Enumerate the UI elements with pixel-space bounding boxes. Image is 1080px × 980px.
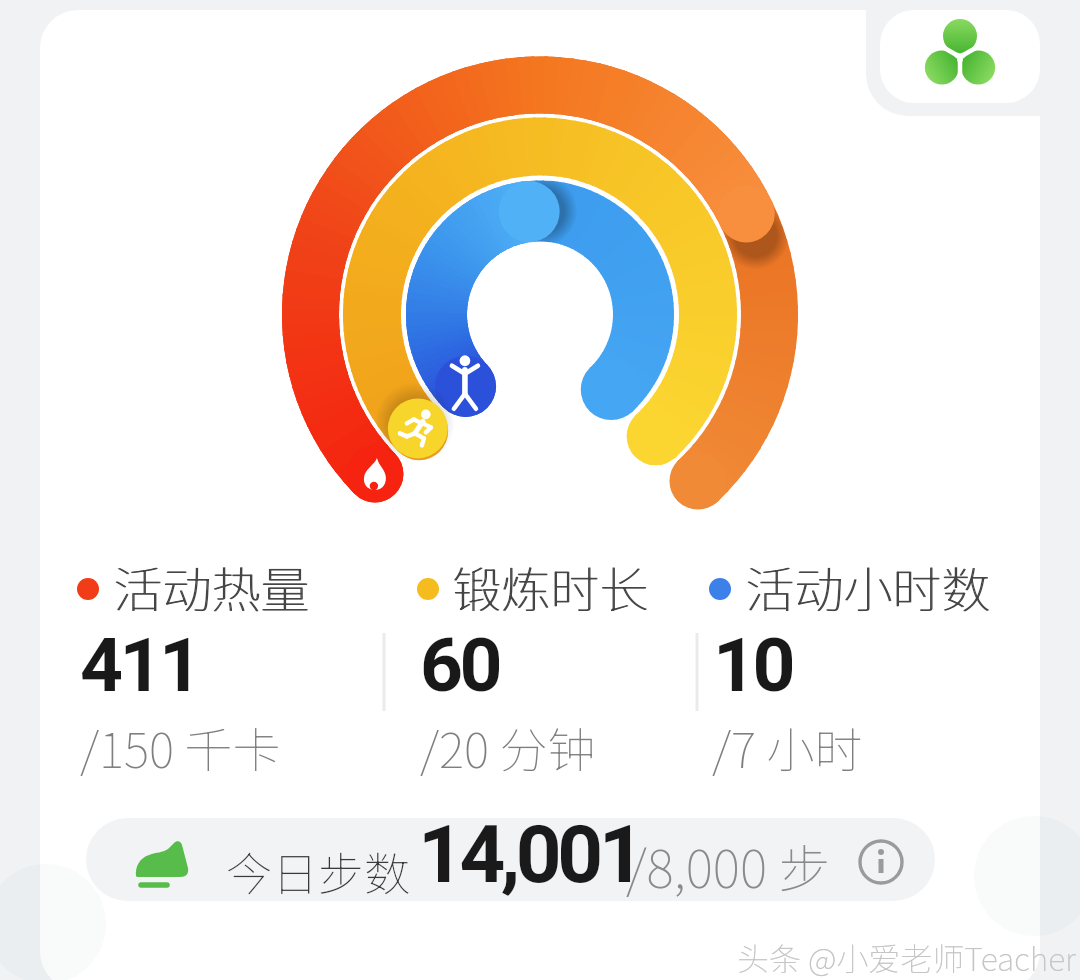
staticText: 锻炼时长 bbox=[453, 551, 650, 622]
staticText: 14,001 bbox=[418, 808, 641, 902]
staticText: 头条 @小爱老师Teacher bbox=[737, 934, 1076, 980]
button[interactable] bbox=[282, 55, 798, 571]
staticText: 活动热量 bbox=[114, 551, 311, 622]
staticText: 活动小时数 bbox=[746, 551, 992, 622]
staticText: 411 bbox=[80, 621, 199, 709]
staticText: 活动热量 bbox=[113, 551, 310, 622]
staticText: 活动小时数 bbox=[745, 551, 991, 622]
staticText: /7 小时 bbox=[712, 712, 863, 782]
button[interactable] bbox=[880, 10, 1040, 103]
staticText: /8,000 步 bbox=[626, 828, 831, 903]
staticText: 60 bbox=[420, 621, 500, 709]
staticText: /20 分钟 bbox=[420, 712, 596, 782]
staticText: 今日步数 bbox=[226, 838, 410, 905]
staticText: /150 千卡 bbox=[80, 712, 281, 782]
button[interactable] bbox=[86, 818, 935, 901]
staticText: 锻炼时长 bbox=[452, 551, 649, 622]
staticText: 10 bbox=[713, 621, 793, 709]
